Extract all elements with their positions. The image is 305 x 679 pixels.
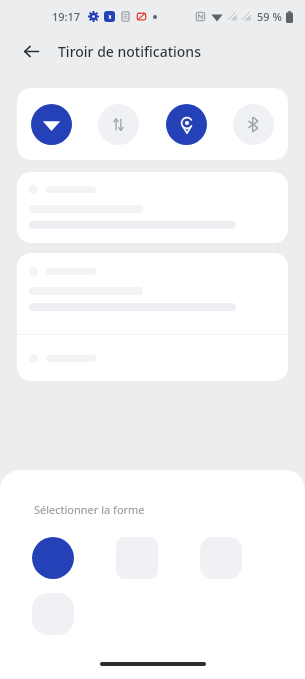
button[interactable]: Données mobiles [98, 104, 139, 145]
staticText: Sélectionner la forme [34, 502, 145, 517]
staticText: 59 % [257, 9, 282, 24]
button[interactable] [32, 537, 74, 579]
staticText: 19:17 [52, 9, 81, 24]
button[interactable] [32, 593, 74, 635]
button[interactable] [200, 537, 242, 579]
button[interactable]: Position [166, 104, 207, 145]
button[interactable]: Bluetooth [233, 104, 274, 145]
button[interactable] [17, 172, 288, 243]
button[interactable] [17, 253, 288, 334]
button[interactable]: Wi-Fi [31, 104, 72, 145]
button[interactable]: Retour [14, 34, 48, 68]
staticText: Tiroir de notifications [58, 42, 201, 61]
